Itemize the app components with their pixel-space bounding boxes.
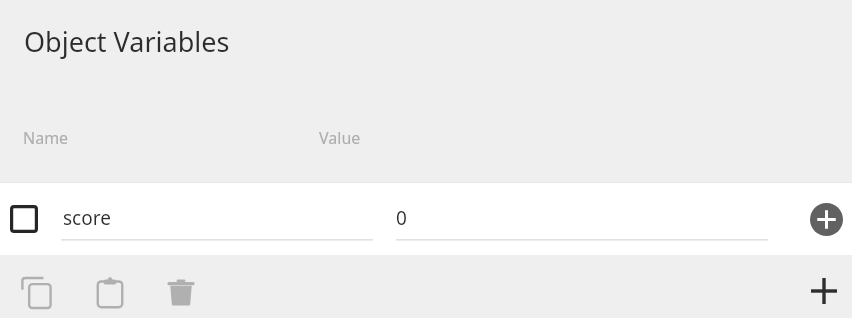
staticText: Object Variables — [24, 23, 230, 60]
button[interactable]: Select variable — [0, 182, 852, 255]
button[interactable]: Copy — [11, 267, 63, 318]
staticText: 0 — [396, 205, 407, 231]
staticText: score — [63, 205, 111, 231]
button[interactable]: Select variable — [6, 201, 42, 237]
staticText: Value — [319, 127, 361, 149]
button[interactable]: Add variable — [799, 266, 849, 316]
button[interactable]: Delete — [155, 267, 207, 318]
button[interactable]: Paste — [84, 267, 136, 318]
button[interactable]: Add value — [806, 199, 846, 239]
staticText: Name — [23, 127, 69, 149]
